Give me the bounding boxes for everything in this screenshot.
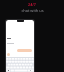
staticText: 24/7 [28, 2, 36, 7]
staticText: chat with us [21, 8, 44, 13]
